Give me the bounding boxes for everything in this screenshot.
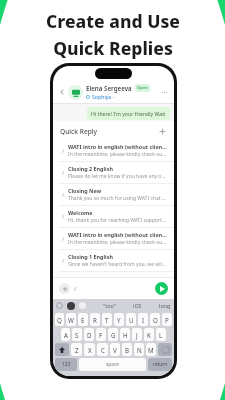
button[interactable]: W bbox=[66, 313, 76, 326]
staticText: M bbox=[148, 346, 154, 354]
button[interactable]: G bbox=[108, 328, 118, 341]
staticText: iOS bbox=[133, 302, 142, 309]
button[interactable]: P bbox=[162, 313, 172, 326]
staticText: K bbox=[147, 331, 151, 339]
staticText: Hi, thank you for reaching WATI support.… bbox=[68, 217, 167, 224]
staticText: X bbox=[88, 346, 92, 354]
button[interactable]: M bbox=[146, 343, 156, 356]
staticText: Since we haven't heard from you, we will… bbox=[68, 261, 167, 268]
button[interactable]: S bbox=[72, 328, 82, 341]
staticText: WATI intro in english (without client's … bbox=[68, 231, 167, 238]
button[interactable]: Lock bbox=[79, 302, 86, 309]
staticText: Open bbox=[137, 85, 148, 91]
staticText: Closing 1 English bbox=[68, 253, 113, 260]
button[interactable]: I bbox=[138, 313, 148, 326]
staticText: Create and Use bbox=[46, 9, 180, 33]
button[interactable]: L bbox=[156, 328, 166, 341]
staticText: long bbox=[159, 302, 171, 309]
button[interactable]: N bbox=[134, 343, 144, 356]
staticText: Quick Reply bbox=[60, 127, 98, 136]
button[interactable]: Shift bbox=[55, 343, 69, 356]
staticText: Closing 2 English bbox=[68, 165, 113, 172]
staticText: Closing New bbox=[68, 187, 102, 194]
button[interactable]: D bbox=[84, 328, 94, 341]
staticText: N bbox=[137, 346, 142, 354]
staticText: I bbox=[142, 316, 145, 324]
button[interactable]: 123 bbox=[55, 358, 77, 371]
staticText: Thank you so much for using WATI chat se… bbox=[68, 195, 167, 202]
staticText: / bbox=[62, 235, 65, 243]
staticText: F bbox=[99, 331, 103, 339]
staticText: Elena Sergeeva bbox=[86, 84, 132, 92]
button[interactable]: / bbox=[53, 184, 174, 205]
button[interactable]: / bbox=[53, 140, 174, 161]
button[interactable]: O bbox=[150, 313, 160, 326]
staticText: E bbox=[81, 316, 85, 324]
button[interactable]: R bbox=[90, 313, 100, 326]
button[interactable]: Y bbox=[114, 313, 124, 326]
staticText: A bbox=[64, 331, 68, 339]
staticText: U bbox=[129, 316, 134, 324]
staticText: D bbox=[87, 331, 92, 339]
staticText: Sophiya - bbox=[92, 93, 115, 100]
staticText: / bbox=[62, 169, 65, 177]
button[interactable]: Edit bbox=[67, 302, 75, 310]
staticText: G bbox=[111, 331, 116, 339]
button[interactable]: Attach bbox=[59, 283, 70, 294]
staticText: space bbox=[106, 361, 119, 368]
button[interactable]: B bbox=[122, 343, 132, 356]
button[interactable]: Add quick reply bbox=[158, 127, 167, 136]
staticText: "too" bbox=[103, 302, 116, 309]
staticText: Z bbox=[75, 346, 79, 354]
button[interactable]: Back bbox=[57, 87, 67, 97]
staticText: Quick Replies bbox=[53, 36, 173, 60]
button[interactable]: V bbox=[110, 343, 120, 356]
staticText: In the meantime, please kindly check out… bbox=[68, 151, 167, 158]
staticText: / bbox=[62, 213, 65, 221]
button[interactable]: Z bbox=[71, 343, 82, 356]
staticText: Please do let me know if you have any ot… bbox=[68, 173, 167, 180]
staticText: V bbox=[113, 346, 117, 354]
button[interactable]: Send bbox=[155, 282, 168, 295]
staticText: C bbox=[101, 346, 105, 354]
staticText: return bbox=[153, 361, 168, 368]
staticText: S bbox=[75, 331, 79, 339]
staticText: H bbox=[123, 331, 128, 339]
staticText: / bbox=[62, 191, 65, 199]
staticText: Hi there! I'm your friendly Wati bbox=[91, 110, 166, 117]
staticText: Y bbox=[117, 316, 121, 324]
button[interactable]: space bbox=[79, 358, 146, 371]
staticText: WATI intro in english (without client's … bbox=[68, 143, 167, 150]
button[interactable]: H bbox=[120, 328, 130, 341]
staticText: W bbox=[68, 316, 74, 324]
staticText: L bbox=[159, 331, 163, 339]
button[interactable]: J bbox=[132, 328, 142, 341]
button[interactable]: / bbox=[53, 206, 174, 227]
staticText: R bbox=[93, 316, 97, 324]
button[interactable]: return bbox=[148, 358, 172, 371]
staticText: Welcome bbox=[68, 209, 93, 216]
staticText: / bbox=[74, 285, 77, 293]
button[interactable]: T bbox=[102, 313, 112, 326]
staticText: / bbox=[62, 257, 65, 265]
button[interactable]: / bbox=[53, 162, 174, 183]
button[interactable]: U bbox=[126, 313, 136, 326]
button[interactable]: Backspace bbox=[158, 343, 172, 356]
staticText: In the meantime, please kindly check out… bbox=[68, 239, 167, 246]
button[interactable]: / bbox=[53, 250, 174, 271]
staticText: T bbox=[105, 316, 109, 324]
staticText: J bbox=[136, 331, 138, 339]
staticText: O bbox=[153, 316, 158, 324]
button[interactable]: / bbox=[53, 228, 174, 249]
button[interactable]: Q bbox=[55, 313, 64, 326]
button[interactable]: Emoji bbox=[56, 302, 63, 309]
button[interactable]: F bbox=[96, 328, 106, 341]
button[interactable]: X bbox=[84, 343, 95, 356]
button[interactable]: K bbox=[144, 328, 154, 341]
staticText: P bbox=[165, 316, 169, 324]
button[interactable]: A bbox=[61, 328, 70, 341]
button[interactable]: C bbox=[97, 343, 108, 356]
staticText: B bbox=[125, 346, 130, 354]
button[interactable]: E bbox=[78, 313, 88, 326]
button[interactable]: More options bbox=[158, 86, 170, 98]
